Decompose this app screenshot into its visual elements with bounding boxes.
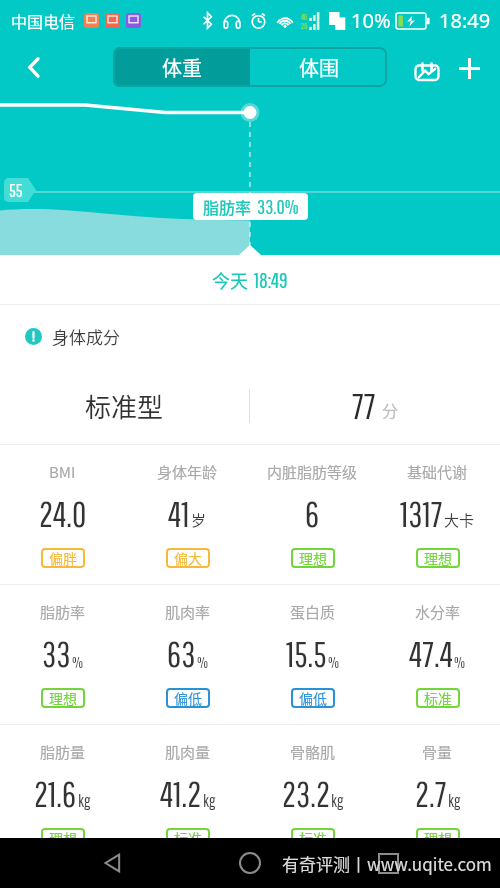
staticText: 骨量 bbox=[422, 741, 453, 763]
staticText: 内脏脂肪等级 bbox=[267, 461, 358, 483]
staticText: 岁 bbox=[191, 509, 207, 531]
staticText: 理想 bbox=[424, 548, 452, 568]
staticText: 身体成分 bbox=[52, 324, 120, 349]
button[interactable]: 身体年龄 bbox=[125, 445, 250, 584]
staticText: kg bbox=[203, 791, 216, 811]
staticText: 脂肪率 bbox=[40, 601, 86, 623]
staticText: 今天 bbox=[212, 267, 248, 293]
button[interactable]: 内脏脂肪等级 bbox=[250, 445, 375, 584]
button[interactable]: 脂肪率 bbox=[0, 585, 125, 724]
button[interactable]: 骨骼肌 bbox=[250, 725, 375, 864]
staticText: 63 bbox=[167, 634, 196, 674]
button[interactable]: Recents bbox=[363, 838, 413, 888]
staticText: 偏大 bbox=[174, 548, 202, 568]
staticText: 18:49 bbox=[254, 268, 288, 292]
staticText: 24.0 bbox=[39, 494, 87, 534]
button[interactable]: BMI bbox=[0, 445, 125, 584]
staticText: 分 bbox=[382, 398, 399, 421]
staticText: 理想 bbox=[49, 688, 77, 708]
button[interactable]: 体重 bbox=[113, 47, 250, 87]
button[interactable]: 蛋白质 bbox=[250, 585, 375, 724]
staticText: 15.5 bbox=[286, 634, 327, 674]
button[interactable]: Back bbox=[88, 838, 138, 888]
staticText: kg bbox=[331, 791, 344, 811]
button[interactable]: 水分率 bbox=[375, 585, 500, 724]
staticText: 中国电信 bbox=[11, 9, 76, 32]
button[interactable]: 肌肉量 bbox=[125, 725, 250, 864]
staticText: kg bbox=[78, 791, 91, 811]
staticText: kg bbox=[448, 791, 461, 811]
button[interactable]: 体围 bbox=[250, 47, 387, 87]
staticText: 水分率 bbox=[415, 601, 461, 623]
button[interactable]: 骨量 bbox=[375, 725, 500, 864]
staticText: BMI bbox=[49, 461, 76, 483]
staticText: 21.6 bbox=[34, 774, 77, 814]
staticText: % bbox=[328, 653, 340, 671]
staticText: 33.0% bbox=[257, 195, 299, 218]
staticText: 体围 bbox=[299, 53, 339, 82]
staticText: 18:49 bbox=[439, 7, 491, 34]
staticText: % bbox=[72, 653, 84, 671]
staticText: 脂肪量 bbox=[40, 741, 86, 763]
staticText: 体重 bbox=[162, 53, 202, 82]
staticText: 理想 bbox=[299, 548, 327, 568]
button[interactable]: Add bbox=[446, 40, 492, 105]
staticText: 标准型 bbox=[85, 387, 164, 425]
button[interactable]: 脂肪量 bbox=[0, 725, 125, 864]
staticText: 骨骼肌 bbox=[290, 741, 336, 763]
staticText: 77 bbox=[352, 386, 376, 426]
staticText: 偏低 bbox=[174, 688, 202, 708]
staticText: 蛋白质 bbox=[290, 601, 336, 623]
staticText: 肌肉量 bbox=[165, 741, 211, 763]
staticText: 4G bbox=[301, 12, 308, 21]
staticText: 41 bbox=[168, 494, 190, 534]
staticText: 41.2 bbox=[160, 774, 202, 814]
staticText: 标准 bbox=[299, 828, 327, 848]
button[interactable]: 肌肉率 bbox=[125, 585, 250, 724]
staticText: 47.4 bbox=[409, 634, 453, 674]
staticText: 标准 bbox=[174, 828, 202, 848]
staticText: 偏胖 bbox=[49, 548, 77, 568]
staticText: 肌肉率 bbox=[165, 601, 211, 623]
button[interactable]: Back bbox=[0, 40, 62, 105]
staticText: 55 bbox=[9, 180, 23, 201]
staticText: 标准 bbox=[424, 688, 452, 708]
staticText: 理想 bbox=[424, 828, 452, 848]
button[interactable]: Home bbox=[225, 838, 275, 888]
staticText: 33 bbox=[42, 634, 71, 674]
staticText: 有奇评测丨www.uqite.com bbox=[282, 851, 492, 876]
staticText: 脂肪率 bbox=[203, 195, 252, 218]
staticText: 2G bbox=[301, 21, 308, 30]
staticText: 大卡 bbox=[444, 509, 475, 531]
button[interactable]: History chart bbox=[404, 40, 449, 105]
staticText: 理想 bbox=[49, 828, 77, 848]
staticText: 偏低 bbox=[299, 688, 327, 708]
staticText: 1317 bbox=[400, 494, 443, 534]
staticText: 23.2 bbox=[282, 774, 330, 814]
staticText: % bbox=[454, 653, 466, 671]
staticText: 10% bbox=[351, 7, 391, 34]
button[interactable]: 基础代谢 bbox=[375, 445, 500, 584]
staticText: % bbox=[197, 653, 209, 671]
staticText: 2.7 bbox=[415, 774, 447, 814]
staticText: 身体年龄 bbox=[157, 461, 218, 483]
staticText: 基础代谢 bbox=[407, 461, 468, 483]
staticText: 6 bbox=[305, 494, 320, 534]
